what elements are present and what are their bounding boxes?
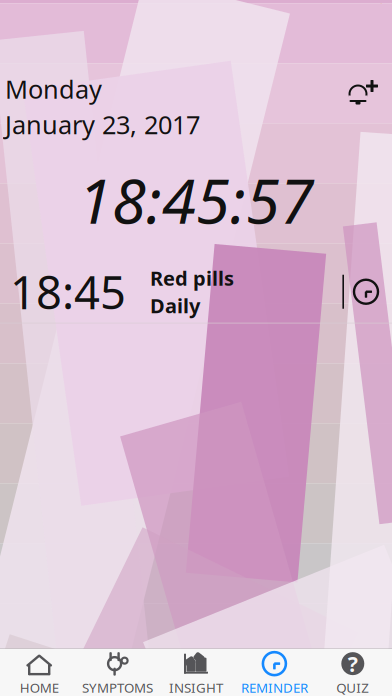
button[interactable]: Add reminder: [340, 70, 386, 114]
staticText: Daily: [150, 292, 200, 319]
button[interactable]: HOME: [0, 646, 78, 696]
button[interactable]: ?: [314, 646, 392, 696]
staticText: Monday: [5, 72, 102, 106]
staticText: 18:45:57: [78, 159, 314, 241]
staticText: HOME: [20, 679, 59, 696]
staticText: 18:45: [10, 262, 126, 322]
staticText: QUIZ: [336, 679, 369, 696]
button[interactable]: INSIGHT: [157, 646, 235, 696]
staticText: INSIGHT: [169, 679, 223, 696]
button[interactable]: SYMPTOMS: [78, 646, 157, 696]
staticText: Carrier: [6, 0, 59, 21]
staticText: SYMPTOMS: [82, 679, 153, 696]
button[interactable]: REMINDER: [235, 646, 314, 696]
staticText: Red pills: [150, 265, 234, 291]
staticText: REMINDER: [241, 679, 308, 696]
button[interactable]: 18:45: [0, 261, 392, 323]
staticText: January 23, 2017: [5, 108, 200, 141]
staticText: ⚡: [369, 2, 386, 18]
staticText: ?: [348, 649, 358, 678]
